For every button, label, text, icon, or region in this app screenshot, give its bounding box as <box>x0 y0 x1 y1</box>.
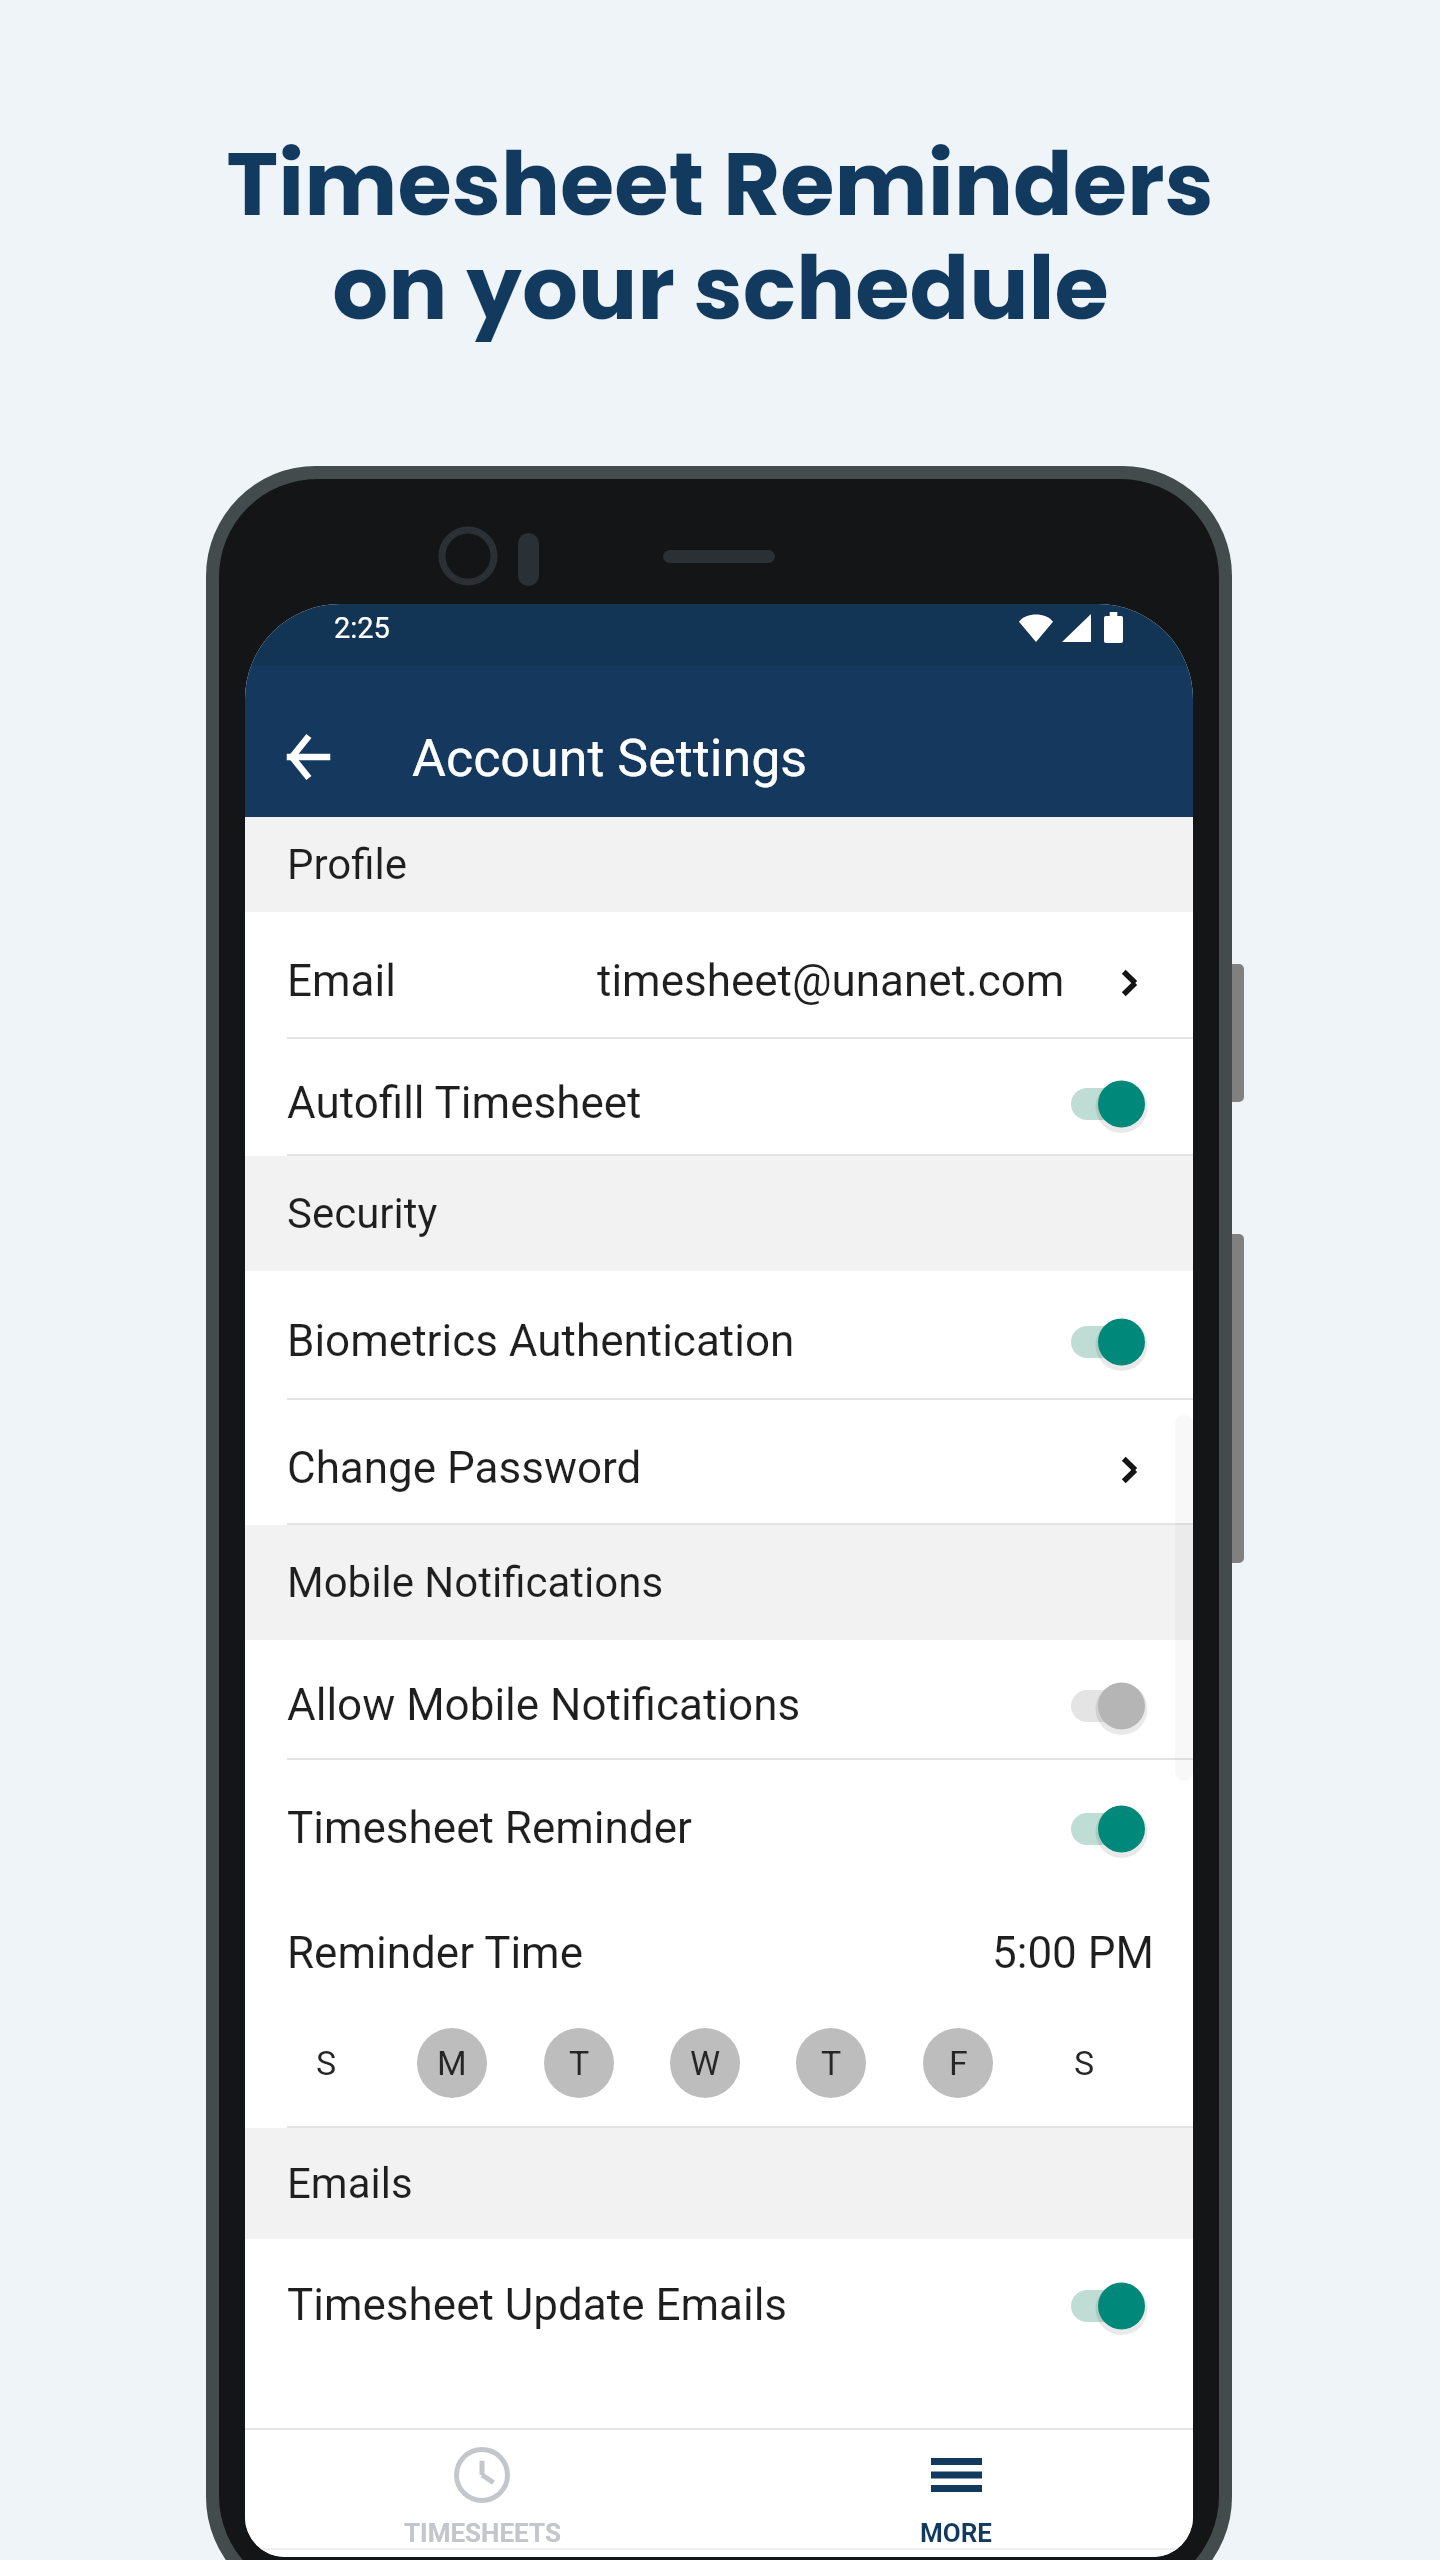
staticText: 2:25 <box>334 611 390 645</box>
staticText: S <box>1074 2043 1095 2083</box>
button[interactable]: Back <box>268 717 348 797</box>
staticText: S <box>316 2043 337 2083</box>
button[interactable]: Email <box>245 912 1193 1037</box>
staticText: Biometrics Authentication <box>287 1315 795 1367</box>
staticText: Timesheet Reminder <box>287 1802 692 1854</box>
staticText: T <box>821 2043 842 2083</box>
staticText: on your schedule <box>332 227 1109 350</box>
button[interactable]: Change Password <box>245 1400 1193 1523</box>
staticText: T <box>569 2043 590 2083</box>
staticText: timesheet@unanet.com <box>597 955 1065 1007</box>
button[interactable]: T <box>796 2028 866 2098</box>
staticText: Account Settings <box>412 728 808 789</box>
button[interactable]: TIMESHEETS <box>245 2430 719 2548</box>
button[interactable]: MORE <box>719 2430 1193 2548</box>
button[interactable]: Reminder Time <box>245 1884 1193 2004</box>
staticText: W <box>690 2043 721 2083</box>
staticText: F <box>949 2043 968 2083</box>
staticText: Autofill Timesheet <box>287 1077 642 1129</box>
button[interactable]: Timesheet Reminder <box>245 1760 1193 1884</box>
staticText: Timesheet Update Emails <box>287 2279 788 2331</box>
staticText: Email <box>287 955 396 1007</box>
staticText: Mobile Notifications <box>287 1558 664 1607</box>
staticText: Reminder Time <box>287 1927 584 1979</box>
staticText: Timesheet Reminders <box>226 123 1214 246</box>
staticText: 5:00 PM <box>992 1927 1154 1979</box>
button[interactable]: Allow Mobile Notifications <box>245 1640 1193 1758</box>
button[interactable]: M <box>417 2028 487 2098</box>
staticText: Allow Mobile Notifications <box>287 1679 801 1731</box>
button[interactable]: S <box>1049 2028 1119 2098</box>
staticText: Emails <box>287 2159 413 2208</box>
button[interactable]: Biometrics Authentication <box>245 1271 1193 1398</box>
button[interactable]: Autofill Timesheet <box>245 1039 1193 1154</box>
staticText: M <box>437 2043 467 2083</box>
button[interactable]: Timesheet Update Emails <box>245 2239 1193 2359</box>
button[interactable]: F <box>923 2028 993 2098</box>
button[interactable]: T <box>544 2028 614 2098</box>
staticText: MORE <box>920 2518 992 2548</box>
button[interactable]: S <box>291 2028 361 2098</box>
button[interactable]: W <box>670 2028 740 2098</box>
staticText: Security <box>287 1189 438 1238</box>
staticText: TIMESHEETS <box>404 2518 561 2548</box>
staticText: Change Password <box>287 1442 642 1494</box>
staticText: Profile <box>287 840 408 889</box>
